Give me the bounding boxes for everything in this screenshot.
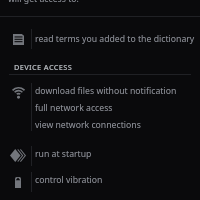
other: Network access xyxy=(12,87,25,100)
staticText: full network access xyxy=(35,102,113,114)
button[interactable] xyxy=(0,169,200,194)
staticText: view network connections xyxy=(35,119,141,131)
other: Run at startup xyxy=(10,149,26,162)
other: Control vibration xyxy=(15,177,21,188)
other: Dictionary xyxy=(13,34,24,45)
staticText: run at startup xyxy=(35,148,92,160)
staticText: control vibration xyxy=(35,174,103,186)
button[interactable] xyxy=(0,24,200,50)
staticText: will get access to. xyxy=(8,0,79,5)
staticText: DEVICE ACCESS xyxy=(14,62,73,72)
staticText: download files without notification xyxy=(35,85,177,97)
button[interactable] xyxy=(0,80,200,134)
button[interactable] xyxy=(0,143,200,168)
staticText: read terms you added to the dictionary xyxy=(35,33,195,45)
